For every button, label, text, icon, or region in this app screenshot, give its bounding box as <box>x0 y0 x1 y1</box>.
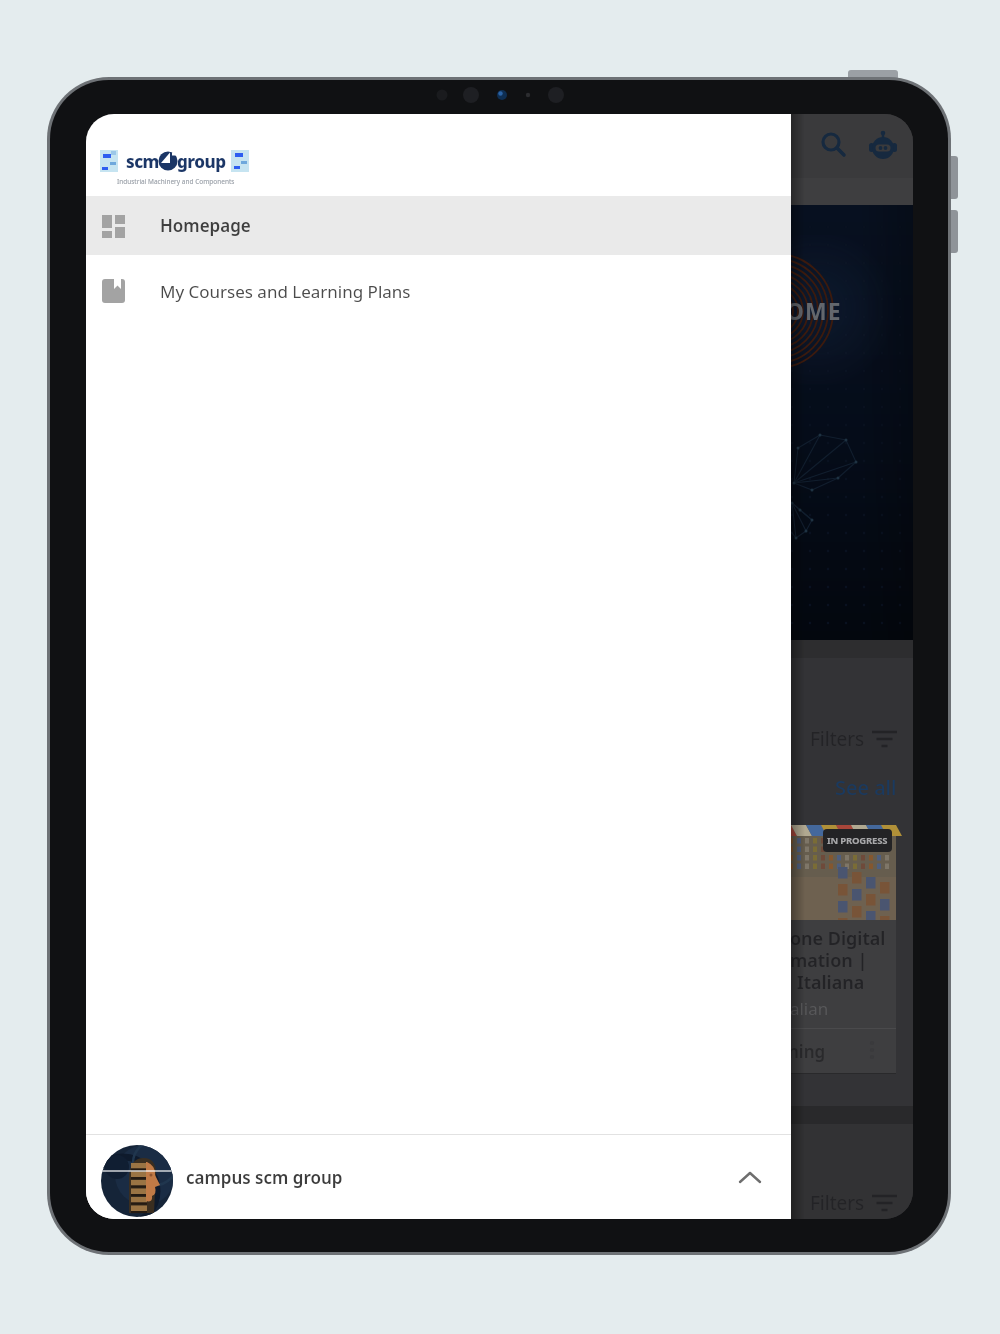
button[interactable]: IN PROGRESS <box>666 825 896 1074</box>
staticText: Industrial Machinery and Components <box>117 177 235 186</box>
staticText: Italian <box>778 997 829 1019</box>
button[interactable]: Homepage <box>86 196 791 255</box>
staticText: Filters <box>810 726 865 752</box>
button[interactable]: See all <box>786 770 897 804</box>
staticText: Italiana <box>797 970 865 994</box>
button[interactable] <box>869 130 897 162</box>
staticText: Filters <box>810 1190 865 1216</box>
staticText: IN PROGRESS <box>827 834 888 847</box>
button[interactable]: Filters <box>726 1186 897 1219</box>
staticText: scm <box>126 150 159 173</box>
staticText: mation | <box>790 948 868 972</box>
staticText: My Courses and Learning Plans <box>160 280 411 303</box>
button[interactable]: scm <box>100 146 252 188</box>
staticText: See all <box>835 774 897 801</box>
staticText: Homepage <box>160 214 251 237</box>
staticText: E-learning <box>741 1040 826 1063</box>
staticText: one Digital <box>790 926 886 950</box>
button[interactable]: Filters <box>726 722 897 756</box>
staticText: campus scm group <box>186 1166 343 1189</box>
staticText: WELCOME <box>720 295 842 326</box>
button[interactable]: campus scm group <box>86 1135 791 1219</box>
button[interactable]: My Courses and Learning Plans <box>86 255 791 327</box>
staticText: group <box>177 150 226 173</box>
button[interactable] <box>819 130 847 158</box>
